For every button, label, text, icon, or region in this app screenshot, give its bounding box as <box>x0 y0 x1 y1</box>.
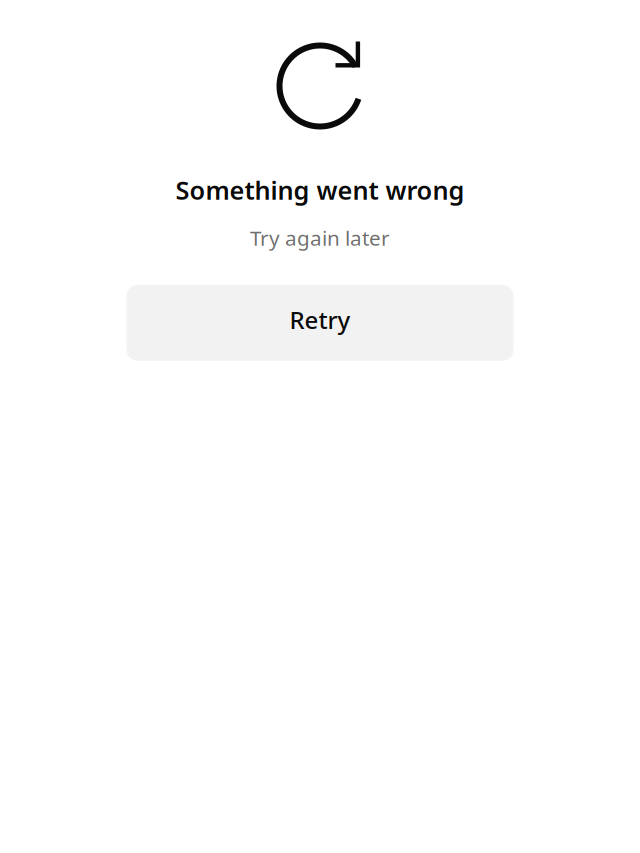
staticText: Retry <box>289 304 350 336</box>
staticText: Something went wrong <box>175 173 464 207</box>
staticText: Try again later <box>250 224 390 252</box>
button[interactable]: Retry <box>126 285 513 361</box>
